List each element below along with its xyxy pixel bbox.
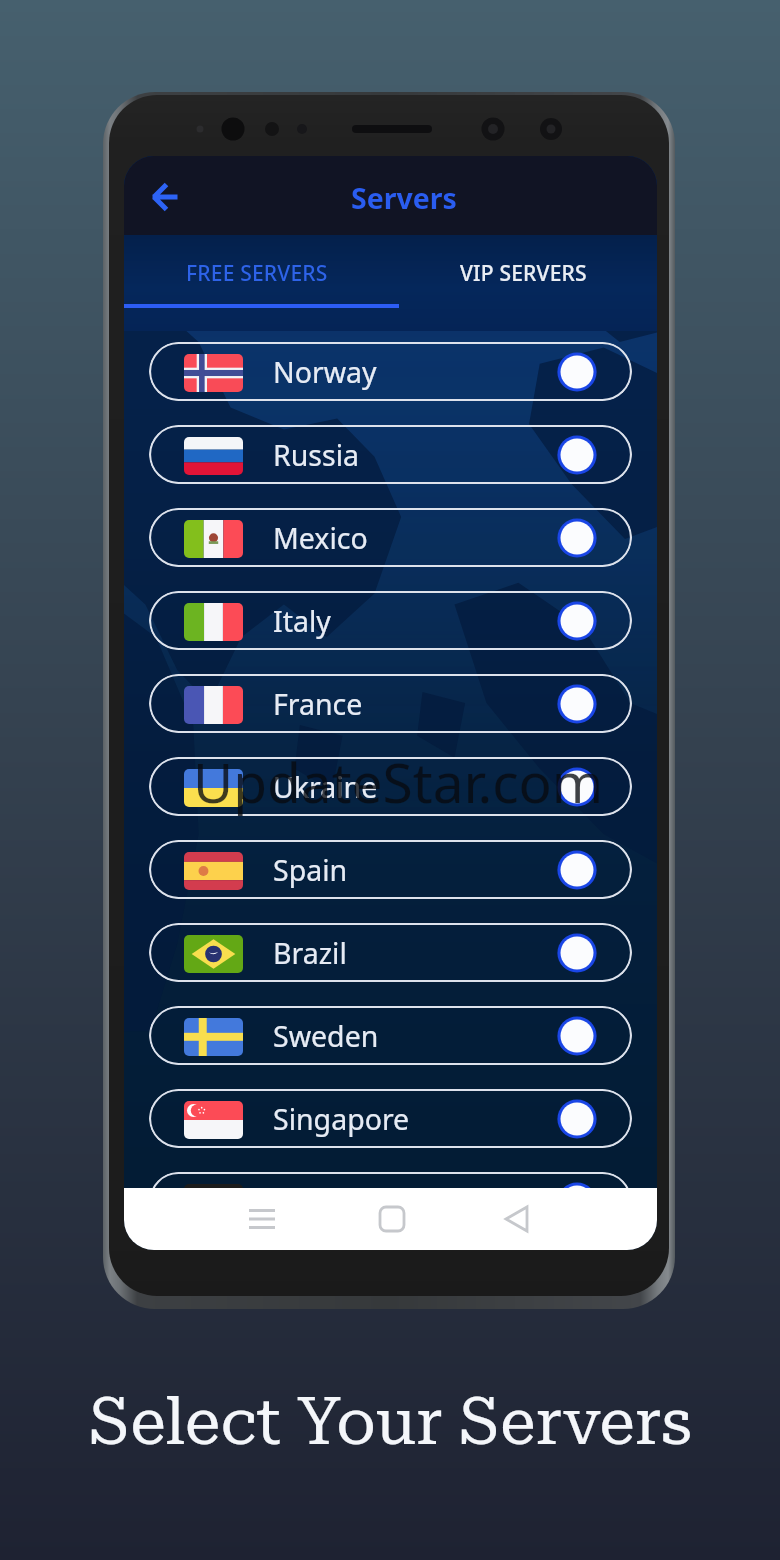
- staticText: Singapore: [273, 1100, 410, 1139]
- button[interactable]: Sweden: [149, 1006, 632, 1065]
- button[interactable]: Home: [367, 1194, 417, 1244]
- staticText: Brazil: [273, 934, 347, 973]
- button[interactable]: Singapore: [149, 1089, 632, 1148]
- staticText: Ukraine: [273, 768, 378, 807]
- button[interactable]: VIP SERVERS: [390, 235, 657, 331]
- button[interactable]: Recent apps: [237, 1194, 287, 1244]
- button[interactable]: Germany: [149, 1172, 632, 1231]
- staticText: Mexico: [273, 519, 368, 558]
- staticText: Servers: [351, 179, 457, 218]
- staticText: Spain: [273, 851, 348, 890]
- staticText: France: [273, 685, 363, 724]
- button[interactable]: Italy: [149, 591, 632, 650]
- staticText: VIP SERVERS: [460, 259, 587, 288]
- staticText: Norway: [273, 353, 377, 392]
- staticText: Germany: [273, 1183, 397, 1222]
- staticText: Italy: [273, 602, 331, 641]
- button[interactable]: Russia: [149, 425, 632, 484]
- staticText: FREE SERVERS: [186, 259, 328, 288]
- staticText: Select Your Servers: [89, 1384, 692, 1460]
- button[interactable]: FREE SERVERS: [124, 235, 390, 331]
- button[interactable]: Spain: [149, 840, 632, 899]
- button[interactable]: Brazil: [149, 923, 632, 982]
- staticText: UpdateStar.com: [193, 744, 604, 819]
- button[interactable]: Mexico: [149, 508, 632, 567]
- button[interactable]: Back: [492, 1194, 542, 1244]
- staticText: Sweden: [273, 1017, 379, 1056]
- button[interactable]: Back: [142, 173, 188, 219]
- button[interactable]: Norway: [149, 342, 632, 401]
- staticText: Russia: [273, 436, 359, 475]
- button[interactable]: France: [149, 674, 632, 733]
- button[interactable]: Ukraine: [149, 757, 632, 816]
